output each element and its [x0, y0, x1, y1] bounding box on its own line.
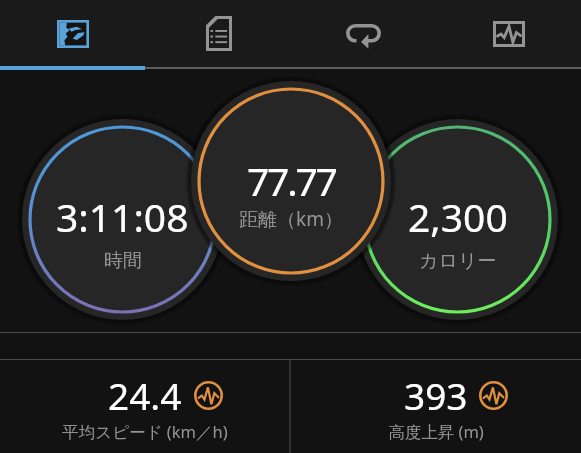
button[interactable]: Details	[146, 0, 291, 67]
staticText: 2,300	[408, 190, 508, 243]
staticText: 77.77	[247, 154, 336, 207]
button[interactable]: Graph	[436, 0, 581, 67]
button[interactable]: 24.4	[0, 360, 290, 453]
staticText: カロリー	[419, 249, 497, 273]
staticText: 高度上昇 (m)	[388, 420, 484, 443]
staticText: 時間	[104, 249, 142, 273]
staticText: 24.4	[108, 370, 182, 420]
button[interactable]: Laps	[291, 0, 436, 67]
button[interactable]: Map	[0, 0, 146, 67]
staticText: 3:11:08	[56, 190, 189, 243]
button[interactable]: 77.77	[186, 76, 396, 286]
staticText: 距離（km）	[239, 206, 343, 232]
button[interactable]: 393	[290, 360, 581, 453]
button[interactable]: 3:11:08	[17, 114, 228, 325]
staticText: 平均スピード (km／h)	[62, 420, 228, 443]
staticText: 393	[404, 370, 468, 420]
button[interactable]: 2,300	[352, 114, 563, 325]
